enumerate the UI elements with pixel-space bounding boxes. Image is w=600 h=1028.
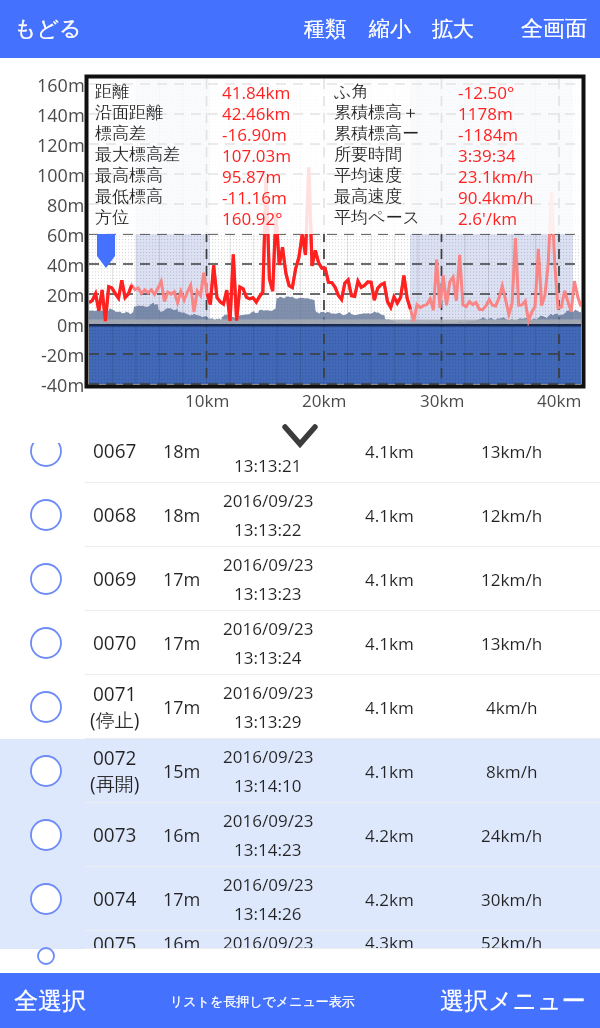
staticText: 0074 xyxy=(93,886,137,912)
staticText: 13:13:23 xyxy=(234,582,302,605)
staticText: 最低標高 xyxy=(95,186,163,207)
staticText: 13:14:23 xyxy=(234,838,302,861)
staticText: 17m xyxy=(163,631,201,656)
staticText: 累積標高＋ xyxy=(334,102,419,123)
staticText: 2016/09/23 xyxy=(223,873,314,896)
staticText: 最高標高 xyxy=(95,165,163,186)
staticText: 3:39:34 xyxy=(458,144,516,165)
button[interactable]: 0070 xyxy=(0,611,600,675)
button[interactable]: 0072 xyxy=(0,739,600,803)
staticText: 13:14:10 xyxy=(234,774,302,797)
button[interactable]: 0071 xyxy=(0,675,600,739)
button[interactable]: 0075 xyxy=(0,931,600,949)
staticText: 0m xyxy=(57,313,85,338)
staticText: 30km/h xyxy=(481,888,543,911)
staticText: 拡大 xyxy=(432,16,474,42)
staticText: 107.03m xyxy=(222,144,292,165)
staticText: 13:13:22 xyxy=(234,518,302,541)
staticText: 20km xyxy=(302,389,347,412)
staticText: 0068 xyxy=(93,502,137,528)
staticText: 4.2km xyxy=(365,888,414,911)
staticText: 12km/h xyxy=(481,568,543,591)
staticText: 全画面 xyxy=(521,15,587,43)
staticText: 13:13:21 xyxy=(234,454,302,477)
staticText: 4.3km xyxy=(365,931,414,949)
staticText: 13:13:24 xyxy=(234,646,302,669)
staticText: 13km/h xyxy=(481,443,543,463)
staticText: 平均速度 xyxy=(334,165,402,186)
staticText: 2016/09/23 xyxy=(223,553,314,576)
staticText: 12km/h xyxy=(481,504,543,527)
staticText: リストを長押しでメニュー表示 xyxy=(170,993,355,1009)
staticText: 16m xyxy=(163,823,201,848)
button[interactable]: 縮小 xyxy=(364,0,416,58)
staticText: 13:13:29 xyxy=(234,710,302,733)
button[interactable]: 全選択 xyxy=(0,973,100,1028)
button[interactable]: 拡大 xyxy=(427,0,479,58)
staticText: 2016/09/23 xyxy=(223,809,314,832)
staticText: 4.1km xyxy=(365,632,414,655)
staticText: 40m xyxy=(47,253,85,278)
staticText: 17m xyxy=(163,695,201,720)
button[interactable]: 0067 xyxy=(0,443,600,483)
staticText: (再開) xyxy=(90,771,140,797)
staticText: 41.84km xyxy=(222,81,291,102)
staticText: 17m xyxy=(163,887,201,912)
staticText: 0073 xyxy=(93,822,137,848)
button[interactable]: 選択メニュー xyxy=(428,973,600,1028)
staticText: 18m xyxy=(163,443,201,464)
staticText: 4.1km xyxy=(365,443,414,463)
staticText: 18m xyxy=(163,503,201,528)
button[interactable]: Collapse graph xyxy=(276,410,324,458)
button[interactable]: 0069 xyxy=(0,547,600,611)
staticText: 42.46km xyxy=(222,102,291,123)
staticText: 100m xyxy=(37,163,85,188)
staticText: 最高速度 xyxy=(334,186,402,207)
staticText: 平均ペース xyxy=(334,207,420,228)
staticText: 40km xyxy=(537,389,582,412)
staticText: 13:14:26 xyxy=(234,902,302,925)
button[interactable]: 種類 xyxy=(299,0,351,58)
staticText: 23.1km/h xyxy=(458,165,534,186)
staticText: -40m xyxy=(41,373,85,398)
staticText: 90.4km/h xyxy=(458,186,534,207)
staticText: 2016/09/23 xyxy=(223,443,314,448)
staticText: 4km/h xyxy=(486,696,538,719)
staticText: 2.6'/km xyxy=(458,207,518,228)
staticText: 52km/h xyxy=(481,931,543,949)
staticText: 1178m xyxy=(458,102,513,123)
staticText: 8km/h xyxy=(486,760,538,783)
staticText: 2016/09/23 xyxy=(223,931,314,949)
staticText: (停止) xyxy=(90,707,140,733)
staticText: 2016/09/23 xyxy=(223,489,314,512)
staticText: 2016/09/23 xyxy=(223,681,314,704)
staticText: 160.92° xyxy=(222,207,283,228)
staticText: 標高差 xyxy=(95,123,146,144)
staticText: 16m xyxy=(163,931,201,949)
staticText: 0069 xyxy=(93,566,137,592)
staticText: ふ角 xyxy=(334,81,369,102)
button[interactable]: 全画面 xyxy=(516,0,600,58)
staticText: 最大標高差 xyxy=(95,144,180,165)
staticText: 4.1km xyxy=(365,568,414,591)
staticText: 120m xyxy=(37,133,85,158)
button[interactable]: もどる xyxy=(2,0,94,58)
staticText: -12.50° xyxy=(458,81,515,102)
staticText: 沿面距離 xyxy=(95,102,163,123)
staticText: 95.87m xyxy=(222,165,282,186)
button[interactable]: 0073 xyxy=(0,803,600,867)
staticText: -16.90m xyxy=(222,123,287,144)
staticText: 20m xyxy=(47,283,85,308)
staticText: 選択メニュー xyxy=(440,986,586,1016)
staticText: 80m xyxy=(47,193,85,218)
staticText: -11.16m xyxy=(222,186,287,207)
staticText: 24km/h xyxy=(481,824,543,847)
staticText: 4.1km xyxy=(365,760,414,783)
staticText: 4.1km xyxy=(365,696,414,719)
staticText: 縮小 xyxy=(369,16,411,42)
staticText: 4.1km xyxy=(365,504,414,527)
button[interactable]: 0068 xyxy=(0,483,600,547)
button[interactable]: 0074 xyxy=(0,867,600,931)
staticText: 30km xyxy=(420,389,465,412)
staticText: 2016/09/23 xyxy=(223,617,314,640)
